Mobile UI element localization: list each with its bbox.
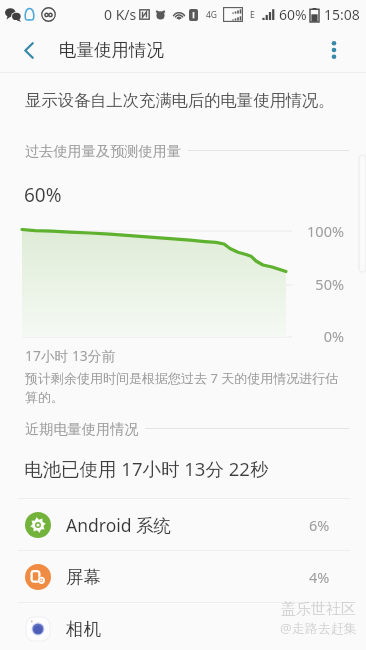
- staticText: 6%: [309, 515, 330, 535]
- staticText: Android 系统: [66, 513, 172, 537]
- staticText: 盖乐世社区: [281, 600, 356, 619]
- staticText: @走路去赶集: [280, 619, 357, 637]
- staticText: 50%: [278, 274, 344, 294]
- staticText: 4%: [309, 567, 330, 587]
- staticText: 15:08: [324, 5, 360, 24]
- staticText: 60%: [279, 5, 307, 24]
- staticText: 电池已使用 17小时 13分 22秒: [24, 456, 269, 481]
- button[interactable]: Android 系统: [0, 499, 366, 550]
- staticText: 60%: [24, 182, 62, 208]
- staticText: E: [250, 9, 255, 21]
- staticText: 屏幕: [66, 566, 101, 588]
- staticText: 显示设备自上次充满电后的电量使用情况。: [25, 90, 335, 111]
- staticText: 电量使用情况: [59, 39, 164, 61]
- button[interactable]: 屏幕: [0, 551, 366, 602]
- staticText: 过去使用量及预测使用量: [25, 142, 182, 158]
- staticText: 4G: [206, 9, 218, 21]
- staticText: 100%: [278, 221, 344, 241]
- staticText: 0 K/s: [104, 5, 137, 24]
- staticText: 0%: [278, 326, 344, 346]
- staticText: 预计剩余使用时间是根据您过去 7 天的使用情况进行估算的。: [25, 369, 343, 406]
- staticText: 相机: [66, 618, 101, 640]
- button[interactable]: 相机: [0, 603, 366, 650]
- staticText: 17小时 13分前: [25, 346, 116, 365]
- button[interactable]: More options: [320, 28, 366, 72]
- staticText: 近期电量使用情况: [25, 420, 139, 436]
- button[interactable]: Back: [0, 28, 48, 72]
